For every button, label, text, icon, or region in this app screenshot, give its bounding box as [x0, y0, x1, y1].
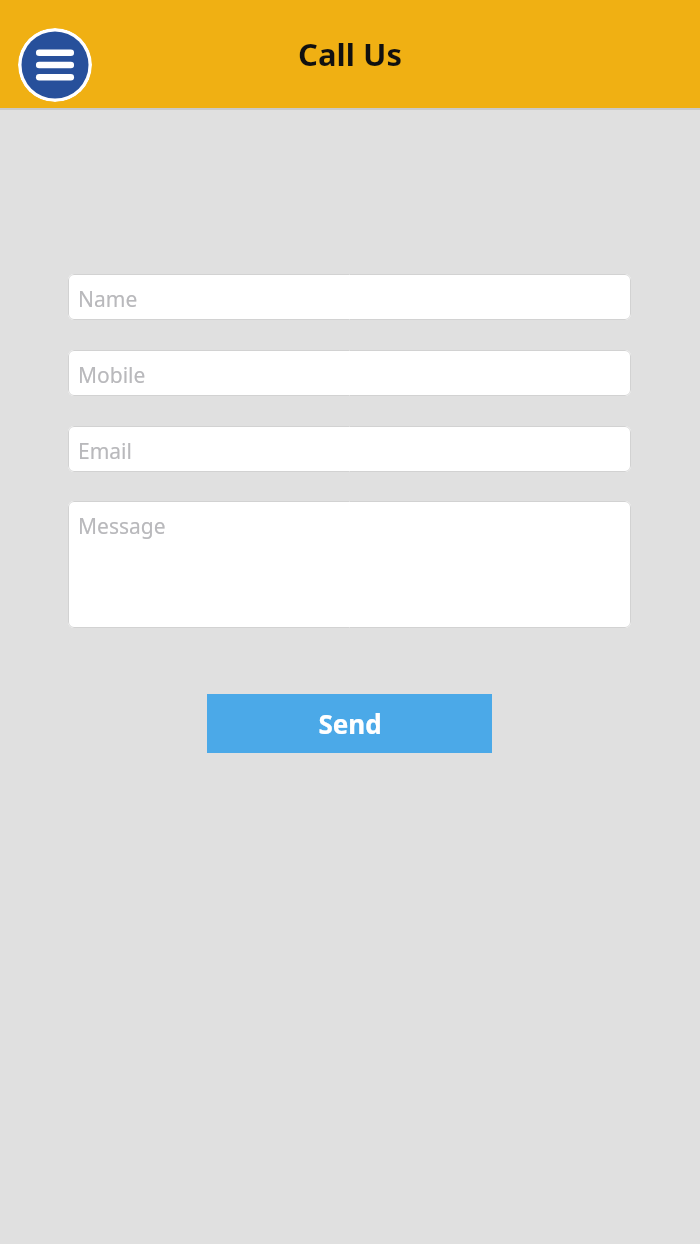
staticText: Call Us: [0, 33, 700, 75]
staticText: Name: [78, 285, 138, 314]
staticText: Send: [318, 706, 382, 741]
button[interactable]: Email: [68, 426, 631, 472]
staticText: Mobile: [78, 361, 146, 390]
button[interactable]: Send: [207, 694, 492, 753]
button[interactable]: Open navigation menu: [18, 28, 92, 102]
staticText: Message: [78, 512, 166, 541]
button[interactable]: Message: [68, 501, 631, 628]
button[interactable]: Name: [68, 274, 631, 320]
button[interactable]: Mobile: [68, 350, 631, 396]
staticText: Email: [78, 437, 132, 466]
